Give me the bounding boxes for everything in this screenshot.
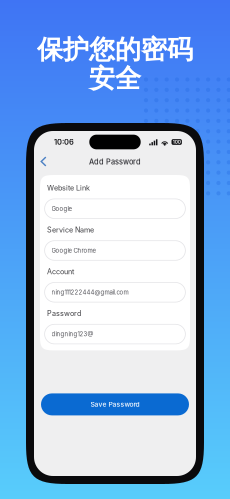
button[interactable]: Save Password (41, 393, 189, 415)
staticText: 保护您的密码 (37, 33, 193, 66)
staticText: Add Password (89, 157, 141, 166)
staticText: Account (47, 267, 74, 276)
staticText: Website Link (47, 184, 90, 192)
staticText: Service Name (47, 225, 94, 234)
button[interactable]: Google Chrome (45, 241, 185, 260)
staticText: dingning123@ (52, 330, 94, 338)
button[interactable]: dingning123@ (45, 324, 185, 344)
staticText: Google (52, 205, 72, 212)
staticText: Google Chrome (52, 247, 96, 254)
staticText: Save Password (90, 400, 139, 408)
button[interactable]: Google (45, 199, 185, 218)
button[interactable]: ning111222444@gmail.com (45, 282, 185, 302)
staticText: 10:06 (54, 137, 74, 146)
staticText: 安全 (89, 62, 141, 95)
staticText: 100 (173, 139, 181, 145)
staticText: ning111222444@gmail.com (52, 289, 129, 296)
staticText: Password (47, 309, 81, 318)
button[interactable]: Back (35, 153, 51, 169)
